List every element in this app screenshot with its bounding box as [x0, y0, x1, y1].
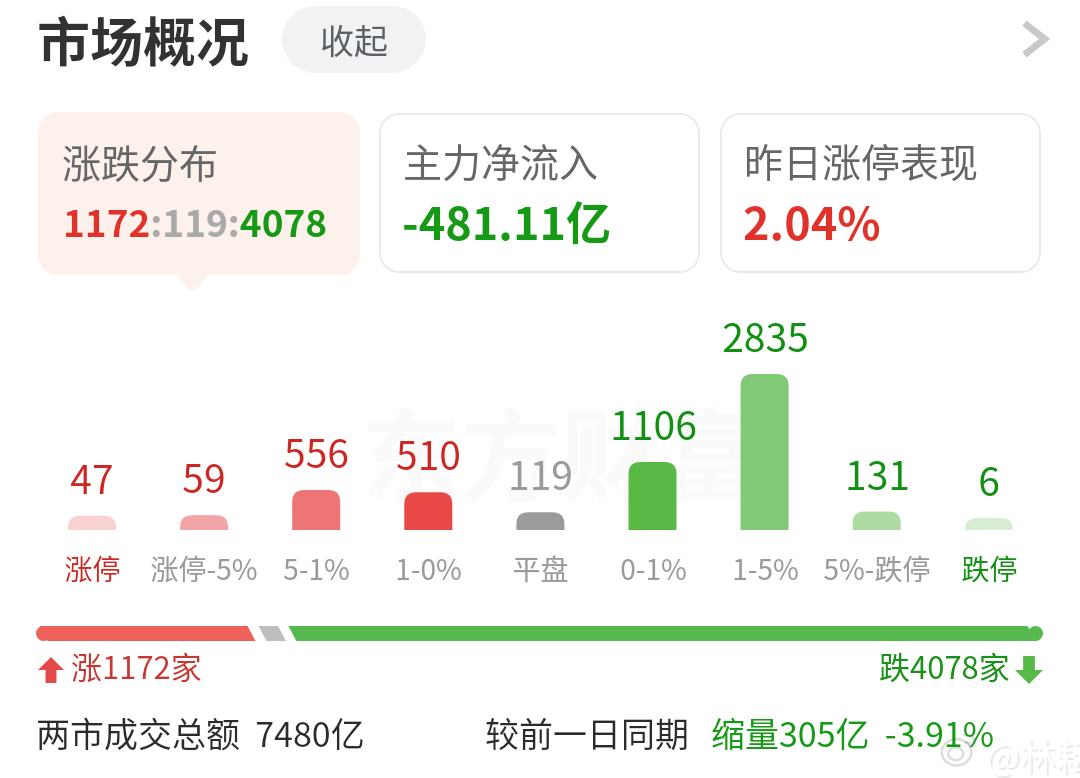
staticText: 59	[182, 448, 226, 504]
staticText: @林耘	[988, 730, 1080, 778]
button[interactable]: 涨跌分布	[38, 112, 360, 275]
staticText: 5-1%	[283, 548, 350, 589]
staticText: 510	[396, 425, 461, 481]
staticText: 东方财富	[361, 377, 761, 522]
staticText: -481.11亿	[402, 188, 612, 253]
staticText: 涨停	[64, 548, 121, 589]
staticText: 收起	[320, 15, 388, 64]
staticText: @林耘	[986, 728, 1080, 778]
staticText: 平盘	[512, 548, 569, 589]
staticText: 较前一日同期	[485, 708, 689, 757]
staticText: 2835	[722, 307, 809, 363]
staticText: 556	[284, 423, 349, 479]
button[interactable]: 昨日涨停表现	[720, 113, 1041, 273]
staticText: 2.04%	[743, 188, 881, 253]
staticText: 119	[508, 445, 573, 501]
staticText: 131	[845, 445, 910, 501]
staticText: 跌停	[961, 548, 1018, 589]
button[interactable]: Expand	[994, 0, 1074, 78]
staticText: 47	[70, 449, 114, 505]
button[interactable]: 主力净流入	[379, 113, 700, 273]
staticText: 5%-跌停	[823, 548, 931, 589]
staticText: 两市成交总额 7480亿	[36, 708, 365, 757]
staticText: 昨日涨停表现	[744, 132, 979, 188]
staticText: 主力净流入	[403, 132, 599, 188]
staticText: 1172:119:4078	[63, 194, 328, 248]
staticText: 0-1%	[620, 548, 687, 589]
staticText: 涨跌分布	[62, 133, 219, 189]
staticText: 市场概况	[37, 1, 249, 78]
staticText: 1-5%	[732, 548, 799, 589]
staticText: 缩量305亿 -3.91%	[711, 708, 995, 757]
staticText: 跌4078家	[879, 643, 1010, 688]
staticText: 1-0%	[395, 548, 462, 589]
staticText: 6	[978, 451, 1000, 507]
button[interactable]: 收起	[282, 6, 426, 73]
staticText: 涨停-5%	[150, 548, 258, 589]
staticText: 涨1172家	[71, 643, 202, 688]
staticText: 1106	[610, 395, 697, 451]
